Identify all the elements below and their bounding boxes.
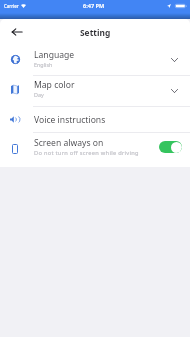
staticText: Day: [34, 91, 44, 98]
button[interactable]: Language: [0, 45, 190, 75]
staticText: Voice instructions: [34, 114, 106, 126]
staticText: Do not turn off screen while driving: [34, 149, 139, 157]
staticText: Screen always on: [34, 137, 104, 149]
button[interactable]: Screen always on toggle: [159, 141, 182, 153]
staticText: Carrier: [4, 3, 19, 9]
staticText: Setting: [80, 27, 111, 38]
staticText: English: [34, 61, 53, 68]
button[interactable]: Expand: [164, 50, 184, 70]
staticText: Map color: [34, 79, 75, 91]
staticText: Language: [34, 49, 75, 61]
button[interactable]: Screen always on: [0, 133, 190, 167]
button[interactable]: Expand: [164, 81, 184, 101]
button[interactable]: Back: [8, 23, 26, 41]
staticText: 6:47 PM: [83, 2, 105, 10]
button[interactable]: Map color: [0, 76, 190, 106]
button[interactable]: Voice instructions: [0, 107, 190, 132]
